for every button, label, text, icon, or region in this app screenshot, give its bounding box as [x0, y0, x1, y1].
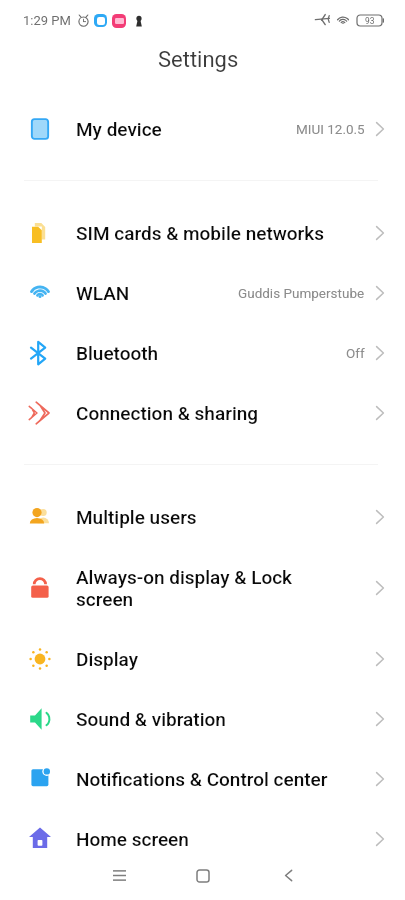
staticText: Guddis Pumperstube — [238, 285, 365, 301]
staticText: Sound & vibration — [76, 708, 376, 730]
staticText: Connection & sharing — [76, 402, 376, 424]
staticText: Bluetooth — [76, 342, 346, 364]
staticText: Home screen — [76, 828, 376, 850]
staticText: SIM cards & mobile networks — [76, 222, 376, 244]
staticText: 93 — [365, 16, 375, 26]
button[interactable]: WLAN — [0, 263, 405, 323]
staticText: WLAN — [76, 282, 238, 304]
staticText: Settings — [158, 47, 239, 73]
button[interactable]: Back — [264, 851, 312, 899]
button[interactable]: Recents — [95, 851, 143, 899]
button[interactable]: Home screen — [0, 809, 405, 869]
button[interactable]: Home — [179, 852, 227, 900]
button[interactable]: SIM cards & mobile networks — [0, 203, 405, 263]
button[interactable]: Always-on display & Lock screen — [0, 547, 405, 629]
button[interactable]: Bluetooth — [0, 323, 405, 383]
staticText: Always-on display & Lock screen — [76, 566, 376, 611]
button[interactable]: Connection & sharing — [0, 383, 405, 443]
staticText: 1:29 PM — [23, 13, 71, 28]
button[interactable]: My device — [0, 99, 405, 159]
button[interactable]: Notifications & Control center — [0, 749, 405, 809]
staticText: My device — [76, 118, 296, 140]
button[interactable]: Multiple users — [0, 487, 405, 547]
staticText: Off — [346, 345, 365, 361]
staticText: Multiple users — [76, 506, 376, 528]
button[interactable]: Display — [0, 629, 405, 689]
staticText: Display — [76, 648, 376, 670]
button[interactable]: Sound & vibration — [0, 689, 405, 749]
staticText: MIUI 12.0.5 — [296, 121, 365, 137]
staticText: Notifications & Control center — [76, 768, 376, 790]
